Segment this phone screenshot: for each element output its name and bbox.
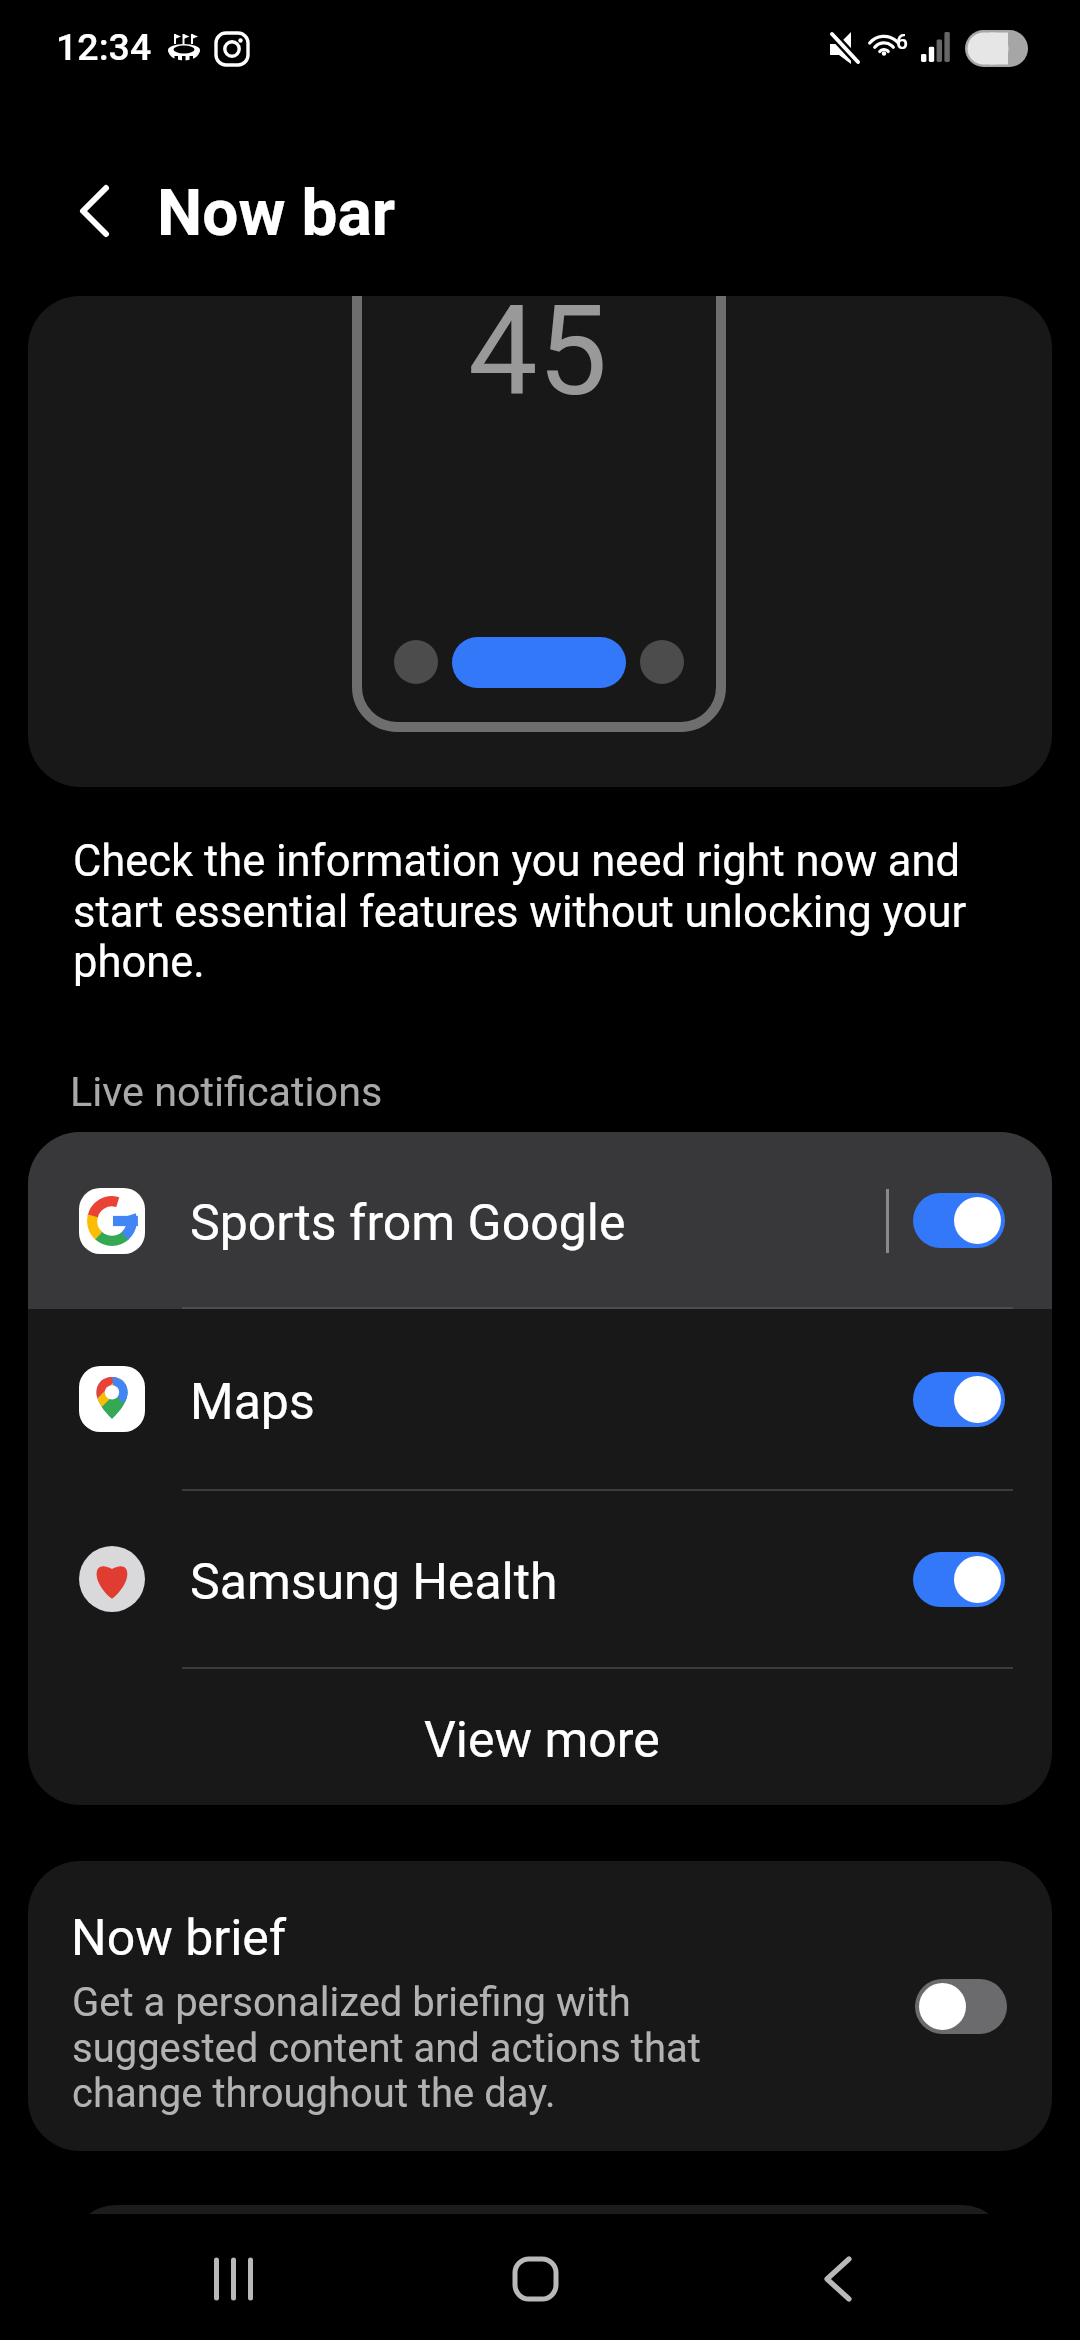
- staticText: Maps: [190, 1373, 315, 1432]
- button[interactable]: Back: [790, 2231, 886, 2327]
- button[interactable]: Navigate up: [46, 163, 142, 259]
- staticText: 12:34: [56, 25, 152, 69]
- staticText: Now bar: [157, 176, 396, 251]
- button[interactable]: Recent apps: [188, 2231, 284, 2327]
- staticText: Samsung Health: [190, 1553, 558, 1612]
- staticText: 6: [896, 30, 908, 55]
- button[interactable]: Sports from Google: [28, 1132, 1052, 1309]
- button[interactable]: Now brief: [28, 1861, 1052, 2151]
- button[interactable]: Turn off: [913, 1193, 1005, 1248]
- button[interactable]: Turn off: [913, 1552, 1005, 1607]
- staticText: 45: [468, 296, 608, 424]
- button[interactable]: Turn off: [913, 1372, 1005, 1427]
- staticText: Now brief: [71, 1909, 287, 1968]
- staticText: Get a personalized briefing with suggest…: [72, 1979, 737, 2117]
- staticText: Live notifications: [70, 1068, 383, 1116]
- button[interactable]: View more: [28, 1669, 1052, 1805]
- button[interactable]: Home: [487, 2231, 583, 2327]
- button[interactable]: Turn on: [915, 1979, 1007, 2034]
- button[interactable]: Maps: [28, 1309, 1052, 1489]
- staticText: Check the information you need right now…: [73, 836, 978, 987]
- staticText: View more: [424, 1711, 660, 1770]
- button[interactable]: Samsung Health: [28, 1491, 1052, 1667]
- staticText: Sports from Google: [190, 1194, 626, 1253]
